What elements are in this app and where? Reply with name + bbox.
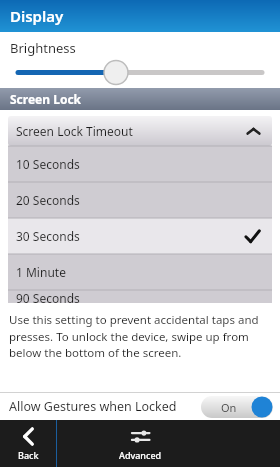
- staticText: 1 Minute: [16, 264, 66, 280]
- button[interactable]: Advanced: [112, 420, 168, 467]
- staticText: Screen Lock: [10, 91, 82, 107]
- staticText: 90 Seconds: [16, 290, 80, 303]
- button[interactable]: Allow Gestures when Locked: [0, 393, 280, 420]
- button[interactable]: Brightness slider: [0, 57, 280, 88]
- staticText: Screen Lock Timeout: [16, 123, 133, 139]
- other: Advanced: [131, 427, 150, 446]
- staticText: Allow Gestures when Locked: [9, 398, 201, 415]
- staticText: 20 Seconds: [16, 192, 80, 208]
- button[interactable]: 30 Seconds: [8, 218, 272, 254]
- staticText: Advanced: [119, 449, 162, 461]
- button[interactable]: 1 Minute: [8, 254, 272, 290]
- other: Back: [19, 427, 38, 446]
- staticText: Display: [10, 6, 64, 26]
- button[interactable]: 90 Seconds: [8, 290, 272, 303]
- staticText: 10 Seconds: [16, 156, 80, 172]
- button[interactable]: 10 Seconds: [8, 146, 272, 182]
- button[interactable]: Screen Lock Timeout: [8, 116, 272, 146]
- staticText: Back: [18, 449, 39, 461]
- button[interactable]: 20 Seconds: [8, 182, 272, 218]
- staticText: Brightness: [10, 39, 76, 57]
- button[interactable]: Back: [0, 420, 56, 467]
- staticText: 30 Seconds: [16, 228, 80, 244]
- staticText: Use this setting to prevent accidental t…: [9, 312, 271, 360]
- staticText: On: [221, 400, 237, 415]
